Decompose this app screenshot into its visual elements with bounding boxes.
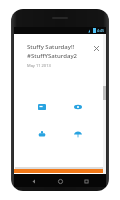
button[interactable]: Home (54, 175, 66, 187)
button[interactable]: View (71, 100, 85, 114)
staticText: 4:45 (97, 28, 104, 33)
staticText: May 11 2013 (27, 63, 51, 68)
button[interactable]: Close (91, 43, 101, 53)
staticText: Stuffy Saturday!! (27, 43, 75, 51)
button[interactable]: Progress (14, 169, 106, 173)
button[interactable]: Back (28, 175, 40, 187)
button[interactable]: Like (35, 127, 49, 141)
button[interactable]: Recents (80, 175, 92, 187)
button[interactable]: Umbrella (71, 127, 85, 141)
button[interactable]: Card (35, 100, 49, 114)
staticText: #StuffYSaturday2 (27, 52, 77, 60)
